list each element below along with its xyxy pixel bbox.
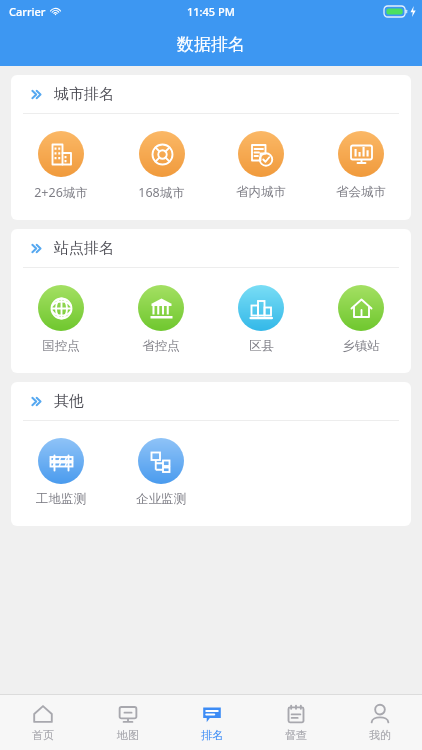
- button[interactable]: 省会城市: [334, 131, 388, 200]
- staticText: 省会城市: [336, 184, 386, 200]
- button[interactable]: 168城市: [136, 131, 187, 201]
- staticText: Carrier: [9, 4, 46, 19]
- button[interactable]: 区县: [236, 285, 286, 354]
- button[interactable]: 排名: [170, 695, 254, 750]
- staticText: 168城市: [138, 184, 185, 201]
- staticText: 我的: [369, 728, 391, 742]
- button[interactable]: 站点排名: [11, 229, 411, 267]
- staticText: 城市排名: [54, 85, 114, 104]
- staticText: 数据排名: [177, 34, 245, 55]
- staticText: 其他: [54, 392, 84, 411]
- button[interactable]: 督查: [254, 695, 338, 750]
- staticText: 排名: [201, 728, 223, 742]
- button[interactable]: 乡镇站: [336, 285, 386, 354]
- staticText: 站点排名: [54, 239, 114, 258]
- staticText: 2+26城市: [34, 184, 88, 201]
- staticText: 督查: [285, 728, 307, 742]
- staticText: 首页: [32, 728, 54, 742]
- button[interactable]: 企业监测: [134, 438, 188, 507]
- button[interactable]: 省内城市: [234, 131, 288, 200]
- staticText: 地图: [117, 728, 139, 742]
- staticText: 11:45 PM: [187, 4, 235, 19]
- button[interactable]: 其他: [11, 382, 411, 420]
- staticText: 乡镇站: [342, 338, 380, 354]
- button[interactable]: 地图: [85, 695, 170, 750]
- button[interactable]: 2+26城市: [32, 131, 90, 201]
- staticText: 企业监测: [136, 491, 186, 507]
- button[interactable]: 国控点: [36, 285, 86, 354]
- button[interactable]: 首页: [0, 695, 85, 750]
- staticText: 省控点: [142, 338, 180, 354]
- staticText: 区县: [249, 338, 274, 354]
- staticText: 省内城市: [236, 184, 286, 200]
- button[interactable]: 城市排名: [11, 75, 411, 113]
- button[interactable]: 工地监测: [34, 438, 88, 507]
- button[interactable]: 省控点: [136, 285, 186, 354]
- staticText: 工地监测: [36, 491, 86, 507]
- button[interactable]: 我的: [338, 695, 422, 750]
- staticText: 国控点: [42, 338, 80, 354]
